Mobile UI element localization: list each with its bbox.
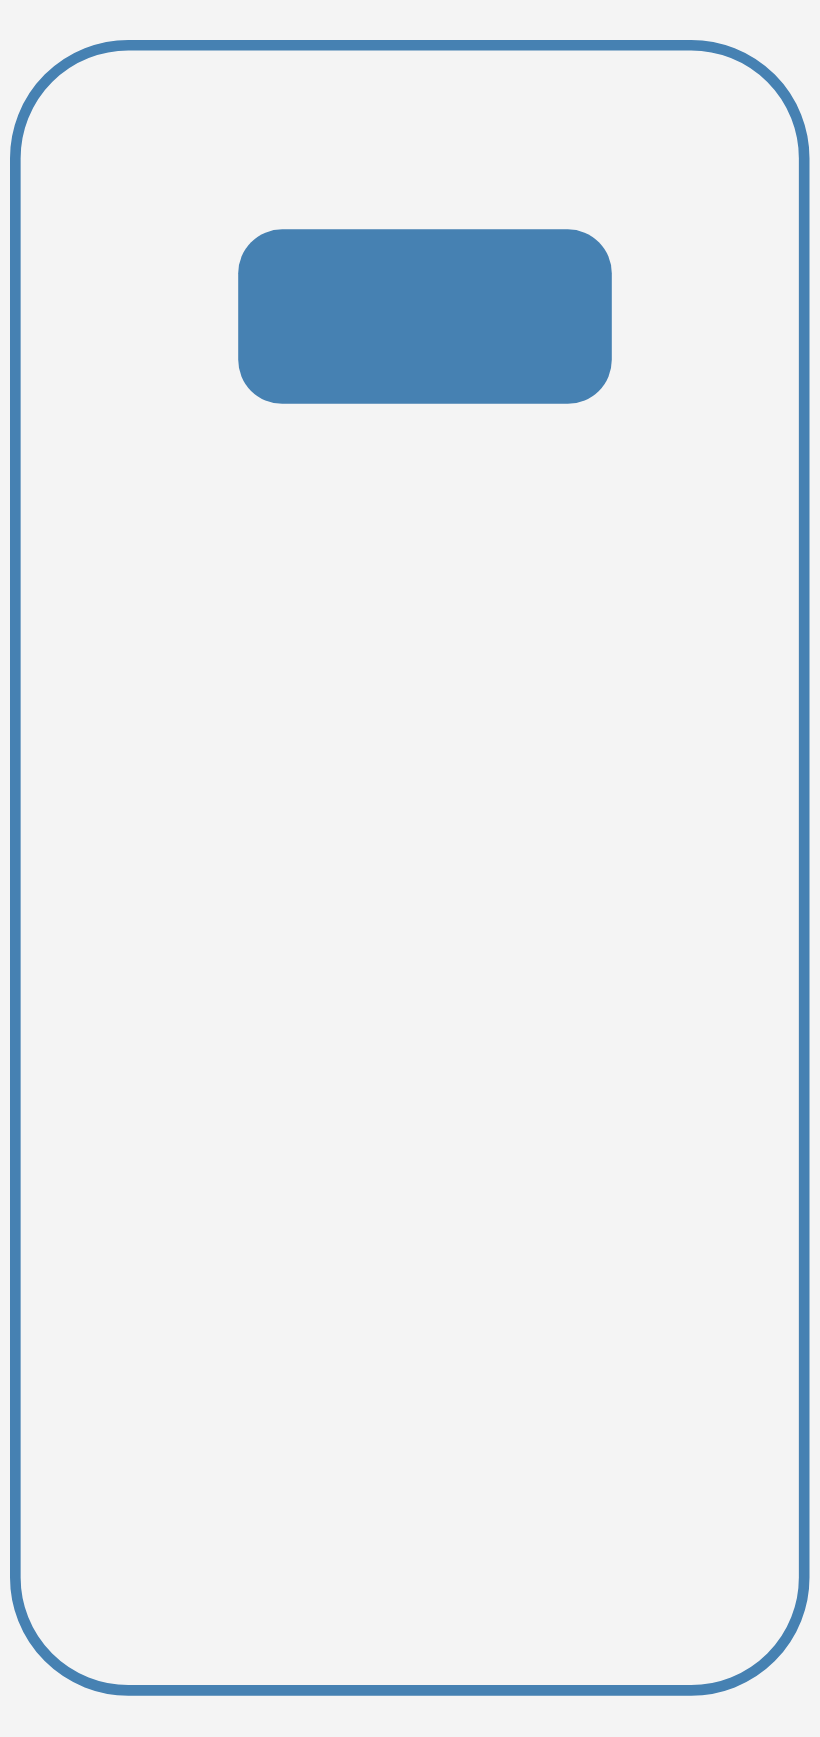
button[interactable]: Screen panel xyxy=(238,229,612,404)
button[interactable]: Phone device xyxy=(10,40,810,1696)
